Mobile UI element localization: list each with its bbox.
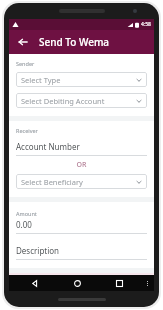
staticText: Description bbox=[16, 245, 60, 256]
staticText: Amount bbox=[16, 210, 37, 217]
button[interactable]: Select Debiting Account bbox=[16, 93, 147, 108]
staticText: Send To Wema bbox=[39, 35, 110, 49]
staticText: OR bbox=[16, 160, 147, 170]
button[interactable]: Back bbox=[14, 33, 32, 51]
button[interactable]: Account Number bbox=[16, 141, 147, 156]
staticText: Receiver bbox=[16, 127, 38, 134]
staticText: 0.00 bbox=[16, 219, 32, 230]
staticText: Select Debiting Account bbox=[21, 96, 136, 106]
button[interactable]: Recent apps bbox=[98, 275, 140, 291]
button[interactable]: Select Beneficiary bbox=[16, 174, 147, 189]
staticText: 4:58 bbox=[141, 21, 151, 28]
button[interactable]: Select Type bbox=[16, 72, 147, 87]
button[interactable]: Home bbox=[56, 275, 98, 291]
staticText: Select Type bbox=[21, 75, 136, 85]
button[interactable]: Back bbox=[13, 275, 56, 291]
button[interactable]: More options bbox=[140, 275, 154, 291]
staticText: Sender bbox=[16, 60, 35, 67]
staticText: Select Beneficiary bbox=[21, 177, 136, 187]
staticText: Account Number bbox=[16, 141, 80, 152]
